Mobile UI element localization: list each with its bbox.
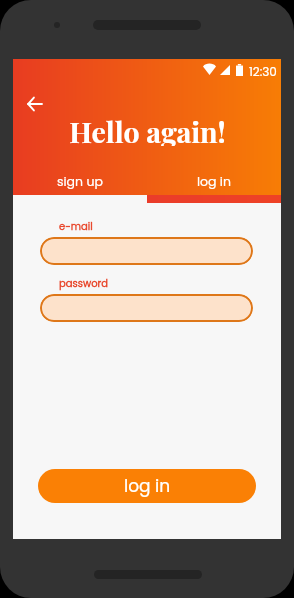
button[interactable]: sign up [13, 167, 147, 195]
staticText: sign up [57, 173, 103, 190]
button[interactable]: log in [147, 167, 281, 195]
staticText: log in [197, 173, 231, 190]
staticText: 12:30 [249, 63, 277, 77]
button[interactable] [40, 294, 253, 322]
staticText: e-mail [59, 219, 93, 233]
staticText: log in [124, 474, 171, 498]
staticText: Hello again! [69, 112, 226, 146]
button[interactable] [40, 237, 253, 265]
staticText: password [59, 276, 109, 290]
button[interactable]: log in [38, 469, 256, 503]
button[interactable]: Back [15, 85, 53, 123]
